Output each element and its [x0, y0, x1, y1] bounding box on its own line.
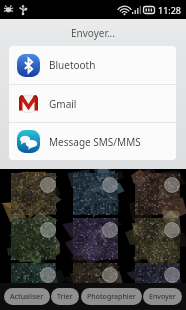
button[interactable]: [73, 173, 118, 214]
staticText: Trier: [57, 292, 73, 302]
button[interactable]: [11, 218, 56, 259]
button[interactable]: [135, 218, 180, 259]
staticText: Actualiser: [10, 292, 44, 302]
staticText: Gmail: [49, 97, 77, 111]
staticText: Bluetooth: [49, 58, 96, 72]
button[interactable]: [135, 263, 180, 304]
staticText: Envoyer...: [71, 26, 115, 40]
button[interactable]: Gmail: [9, 85, 176, 122]
button[interactable]: Actualiser: [4, 288, 50, 305]
staticText: Photographier: [87, 292, 136, 302]
staticText: Message SMS/MMS: [49, 135, 141, 149]
button[interactable]: Envoyer: [143, 288, 182, 305]
button[interactable]: [135, 173, 180, 214]
button[interactable]: Photographier: [81, 288, 142, 305]
button[interactable]: Message SMS/MMS: [9, 123, 176, 160]
button[interactable]: Bluetooth: [9, 46, 176, 84]
button[interactable]: [11, 173, 56, 214]
staticText: Envoyer: [149, 292, 176, 302]
button[interactable]: Trier: [51, 288, 79, 305]
button[interactable]: [73, 218, 118, 259]
button[interactable]: [73, 263, 118, 304]
staticText: 11:28: [158, 4, 182, 16]
button[interactable]: [11, 263, 56, 304]
